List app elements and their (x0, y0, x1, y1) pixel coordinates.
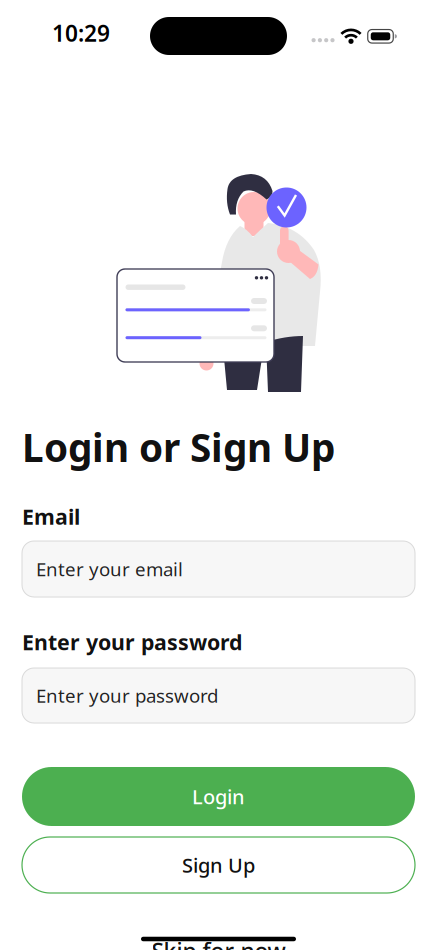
staticText: Enter your password (36, 683, 218, 708)
button[interactable]: Enter your email (22, 541, 415, 597)
staticText: Sign Up (182, 852, 255, 878)
staticText: Login or Sign Up (22, 421, 335, 473)
button[interactable]: Enter your password (22, 668, 415, 723)
button[interactable]: Skip for now (118, 939, 318, 950)
staticText: Email (22, 502, 80, 531)
button[interactable]: Login (22, 767, 415, 826)
staticText: 10:29 (52, 18, 110, 48)
staticText: Skip for now (151, 936, 285, 950)
staticText: Enter your email (36, 557, 183, 581)
staticText: Enter your password (22, 628, 242, 656)
staticText: Login (192, 783, 245, 810)
button[interactable]: Sign Up (22, 837, 415, 893)
